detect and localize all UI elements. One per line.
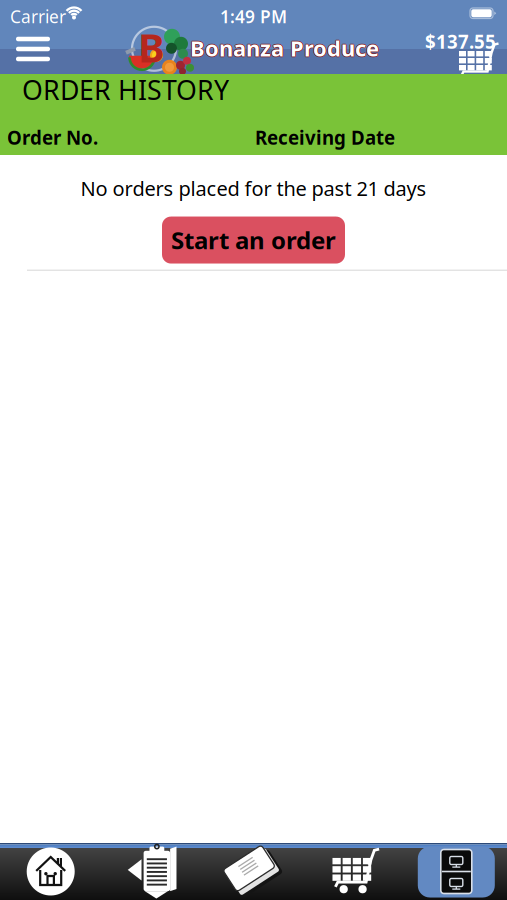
staticText: $137.55	[425, 29, 496, 54]
button[interactable]: Menu	[11, 32, 55, 66]
staticText: Bonanza Produce	[190, 33, 379, 63]
button[interactable]: Catalog	[203, 843, 304, 900]
staticText: No orders placed for the past 21 days	[80, 175, 426, 202]
button[interactable]: Home	[0, 843, 101, 900]
staticText: Bonanza Produce	[191, 33, 380, 63]
staticText: 1:49 PM	[220, 5, 287, 28]
staticText: Start an order	[171, 224, 336, 256]
staticText: Bonanza Produce	[190, 34, 379, 64]
button[interactable]: Cart	[455, 43, 501, 76]
button[interactable]: Orders	[101, 843, 203, 900]
staticText: Bonanza Produce	[190, 32, 379, 62]
staticText: Receiving Date	[255, 125, 395, 150]
staticText: ORDER HISTORY	[22, 72, 229, 107]
button[interactable]: Order History	[406, 843, 507, 900]
staticText: B	[138, 20, 165, 74]
staticText: Bonanza Produce	[189, 33, 378, 63]
staticText: Carrier	[10, 5, 66, 28]
staticText: Order No.	[7, 125, 98, 150]
button[interactable]: Cart	[304, 843, 406, 900]
button[interactable]: Start an order	[162, 217, 345, 264]
